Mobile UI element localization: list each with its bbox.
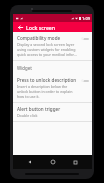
staticText: Lock screen <box>26 24 56 31</box>
button[interactable]: Press to unlock description <box>13 74 92 102</box>
button[interactable]: Toggle Compatibility mode <box>81 36 89 41</box>
button[interactable]: Compatibility mode <box>13 32 92 60</box>
staticText: Alert button trigger <box>17 106 61 112</box>
button[interactable]: Alert button trigger <box>13 103 92 121</box>
button[interactable]: Home <box>47 156 59 168</box>
staticText: Insert a description below the unlock bu… <box>17 84 79 99</box>
button[interactable]: Back <box>24 156 36 168</box>
staticText: Double click <box>17 113 38 118</box>
staticText: Compatibility mode <box>17 35 61 41</box>
button[interactable]: Back <box>16 23 24 31</box>
button[interactable]: Recents <box>69 156 81 168</box>
staticText: Press to unlock description <box>17 77 77 83</box>
staticText: Display a second lock screen layer using… <box>17 42 79 57</box>
staticText: 1:09 <box>82 16 90 21</box>
button[interactable]: Toggle Press to unlock description <box>81 78 89 83</box>
staticText: Widget <box>17 65 32 71</box>
